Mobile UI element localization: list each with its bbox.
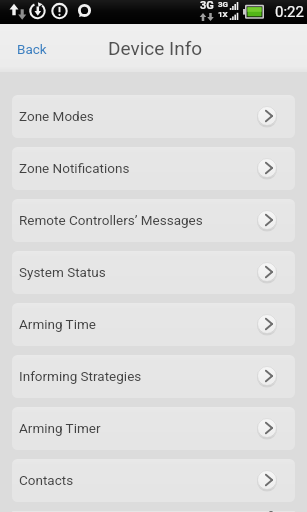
button[interactable]: Contacts (12, 459, 295, 502)
button[interactable]: System Status (12, 251, 295, 294)
other: Open Arming Timer (257, 418, 277, 438)
staticText: Zone Notifications (19, 160, 130, 176)
staticText: Arming Timer (19, 420, 101, 436)
staticText: System Status (19, 264, 106, 280)
staticText: Informing Strategies (19, 368, 142, 384)
other: Open Remote Controllers’ Messages (257, 210, 277, 230)
staticText: 0:22 (275, 3, 304, 21)
button[interactable]: Back (0, 28, 64, 68)
other: Open Zone Notifications (257, 158, 277, 178)
staticText: Remote Controllers’ Messages (19, 212, 203, 228)
staticText: Arming Time (19, 316, 96, 332)
button[interactable]: Informing Strategies (12, 355, 295, 398)
button[interactable]: Zone Notifications (12, 147, 295, 190)
button[interactable]: Remote Controllers’ Messages (12, 199, 295, 242)
staticText: Contacts (19, 472, 74, 488)
staticText: Device Info (108, 37, 203, 59)
button[interactable]: Arming Timer (12, 407, 295, 450)
staticText: 3G (218, 0, 229, 9)
other: Open Contacts (257, 470, 277, 490)
staticText: Zone Modes (19, 108, 94, 124)
other: Open Informing Strategies (257, 366, 277, 386)
button[interactable]: Arming Time (12, 303, 295, 346)
button[interactable]: Extra (12, 511, 295, 512)
other: Open Zone Modes (257, 106, 277, 126)
staticText: 3G (200, 0, 214, 12)
other: Open Arming Time (257, 314, 277, 334)
staticText: 1X (218, 10, 228, 19)
other: Open System Status (257, 262, 277, 282)
button[interactable]: Zone Modes (12, 95, 295, 138)
staticText: Back (17, 41, 47, 57)
